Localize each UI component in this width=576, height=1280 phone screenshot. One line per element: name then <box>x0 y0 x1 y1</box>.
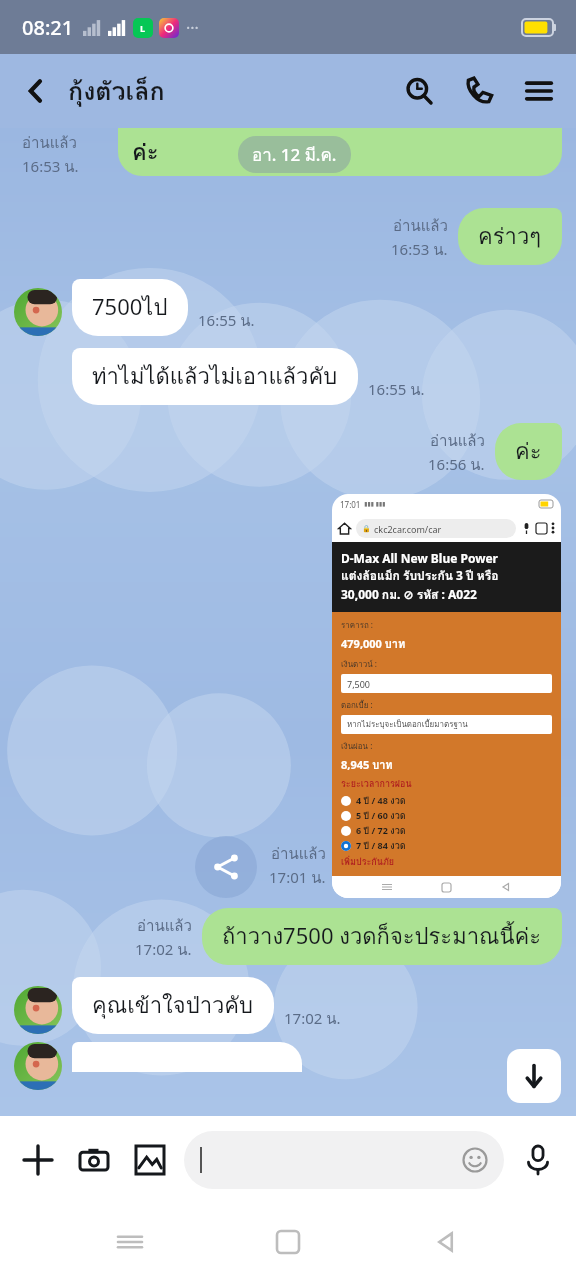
staticText: 479,000 บาท <box>341 635 406 652</box>
button[interactable]: คุณเข้าใจป่าวคับ <box>72 977 274 1034</box>
staticText: คร่าวๆ <box>478 219 542 254</box>
staticText: หากไม่ระบุจะเป็นดอกเบี้ยมาตรฐาน <box>347 718 468 731</box>
staticText: ▮▮▮ ▮▮▮ <box>364 500 386 508</box>
button[interactable] <box>184 1131 504 1189</box>
staticText: 4 ปี / 48 งวด <box>356 794 406 808</box>
button[interactable]: Voice message <box>514 1136 562 1184</box>
staticText: ราคารถ : <box>341 619 373 632</box>
staticText: 7 ปี / 84 งวด <box>356 839 406 853</box>
staticText: 17:02 น. <box>135 938 192 962</box>
button[interactable]: Camera <box>70 1136 118 1184</box>
button[interactable]: ท่าไม่ได้แล้วไม่เอาแล้วคับ <box>72 348 358 405</box>
staticText: อ่านแล้ว <box>430 429 485 453</box>
button[interactable]: Add <box>14 1136 62 1184</box>
button[interactable]: คร่าวๆ <box>458 208 562 265</box>
staticText: 30,000 กม. ⊘ รหัส : A022 <box>341 585 477 604</box>
staticText: 16:55 น. <box>368 378 425 402</box>
staticText: 7500ไป <box>92 290 168 325</box>
staticText: ckc2car.com/car <box>374 523 442 535</box>
staticText: 8,945 บาท <box>341 756 393 773</box>
staticText: ระยะเวลาการผ่อน <box>341 777 412 791</box>
staticText: เงินดาวน์ : <box>341 658 377 671</box>
staticText: อ่านแล้ว <box>393 214 448 238</box>
staticText: 17:01 <box>340 499 361 510</box>
staticText: เพิ่มประกันภัย <box>341 855 395 869</box>
button[interactable]: Scroll to bottom <box>507 1049 561 1103</box>
staticText: ถ้าวาง7500 งวดก็จะประมาณนี้ค่ะ <box>222 919 542 954</box>
staticText: 6 ปี / 72 งวด <box>356 824 406 838</box>
button[interactable]: Home <box>260 1214 316 1270</box>
staticText: แต่งล้อแม็ก รับประกัน 3 ปี หรือ <box>341 566 499 585</box>
staticText: 16:56 น. <box>428 453 485 477</box>
button[interactable]: Share <box>195 836 257 898</box>
staticText: 5 ปี / 60 งวด <box>356 809 406 823</box>
staticText: กุ้งตัวเล็ก <box>68 71 165 111</box>
staticText: 🔒 <box>362 525 371 533</box>
button[interactable]: Search <box>396 68 442 114</box>
staticText: ค่ะ <box>132 135 159 170</box>
staticText: 08:21 <box>22 14 74 41</box>
staticText: L <box>140 22 146 34</box>
staticText: 16:53 น. <box>391 238 448 262</box>
button[interactable]: ค่ะ <box>495 423 562 480</box>
staticText: ··· <box>186 17 199 39</box>
staticText: ค่ะ <box>515 434 542 469</box>
staticText: 17:02 น. <box>284 1007 341 1031</box>
button[interactable]: ค่ะ <box>118 128 562 176</box>
staticText: อ่านแล้ว <box>137 914 192 938</box>
staticText: 17:01 น. <box>269 866 326 890</box>
staticText: ดอกเบี้ย : <box>341 699 373 712</box>
button[interactable]: Menu <box>516 68 562 114</box>
staticText: คุณเข้าใจป่าวคับ <box>92 988 254 1023</box>
button[interactable]: Recents <box>102 1214 158 1270</box>
staticText: 7,500 <box>347 678 371 690</box>
staticText: อา. 12 มี.ค. <box>252 141 337 168</box>
button[interactable]: 7500ไป <box>72 279 188 336</box>
button[interactable]: Gallery <box>126 1136 174 1184</box>
button[interactable]: Back <box>418 1214 474 1270</box>
staticText: D-Max All New Blue Power <box>341 550 498 566</box>
staticText: เงินผ่อน : <box>341 740 373 753</box>
staticText: อ่านแล้ว <box>22 131 77 155</box>
staticText: 16:53 น. <box>22 155 79 179</box>
button[interactable]: Call <box>456 68 502 114</box>
button[interactable]: ถ้าวาง7500 งวดก็จะประมาณนี้ค่ะ <box>202 908 562 965</box>
button[interactable]: Back <box>14 69 58 113</box>
staticText: 16:55 น. <box>198 309 255 333</box>
staticText: ท่าไม่ได้แล้วไม่เอาแล้วคับ <box>92 359 338 394</box>
staticText: อ่านแล้ว <box>271 842 326 866</box>
